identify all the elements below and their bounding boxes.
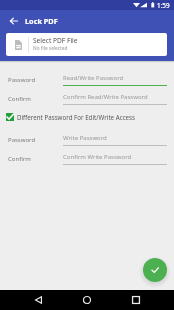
- button[interactable]: Back: [0, 10, 25, 32]
- staticText: 1:59: [157, 1, 170, 10]
- button[interactable]: Password: [0, 70, 174, 89]
- button[interactable]: Confirm: [0, 149, 174, 168]
- staticText: Confirm Read/Write Password: [63, 93, 148, 101]
- staticText: Different Password For Edit/Write Access: [17, 113, 136, 121]
- button[interactable]: Select PDF File: [6, 33, 167, 56]
- staticText: Confirm: [8, 155, 31, 163]
- staticText: Lock PDF: [25, 16, 58, 26]
- staticText: Password: [8, 76, 36, 84]
- button[interactable]: Confirm: [0, 89, 174, 108]
- staticText: Confirm Write Password: [63, 153, 132, 161]
- staticText: Write Password: [63, 134, 107, 142]
- staticText: Select PDF File: [33, 36, 78, 45]
- staticText: No file selected: [33, 45, 68, 52]
- button[interactable]: Different Password For Edit/Write Access: [6, 111, 174, 123]
- button[interactable]: Recent apps: [126, 290, 146, 310]
- button[interactable]: Home: [77, 290, 97, 310]
- button[interactable]: Confirm: [143, 258, 167, 282]
- button[interactable]: Password: [0, 130, 174, 149]
- staticText: Confirm: [8, 95, 31, 103]
- staticText: Read/Write Password: [63, 74, 124, 82]
- button[interactable]: Back: [28, 290, 48, 310]
- staticText: Password: [8, 136, 36, 144]
